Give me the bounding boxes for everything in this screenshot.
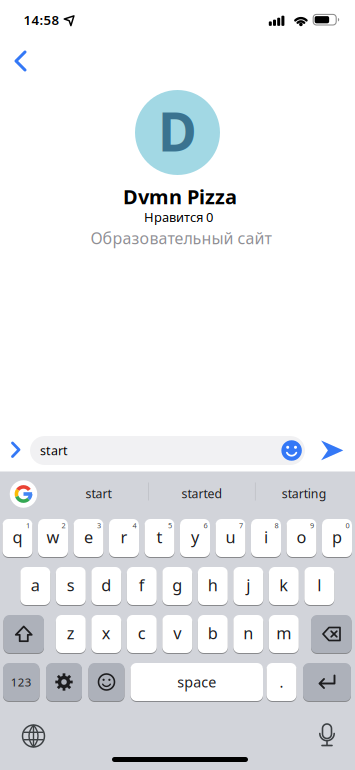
staticText: x	[102, 622, 111, 644]
button[interactable]: starting	[259, 474, 349, 512]
button[interactable]: e	[73, 518, 103, 558]
staticText: j	[246, 574, 250, 596]
staticText: m	[276, 622, 291, 644]
button[interactable]: Period	[266, 662, 296, 702]
button[interactable]: a	[20, 566, 50, 606]
staticText: i	[264, 526, 268, 548]
button[interactable]: k	[269, 566, 299, 606]
staticText: l	[317, 574, 321, 596]
staticText: 5	[168, 520, 172, 530]
button[interactable]: Emoji	[88, 662, 124, 702]
button[interactable]: Bot commands	[3, 437, 29, 463]
button[interactable]: Space	[130, 662, 263, 702]
button[interactable]: t	[144, 518, 174, 558]
staticText: 4	[132, 520, 136, 530]
staticText: c	[138, 622, 146, 644]
button[interactable]: l	[304, 566, 334, 606]
button[interactable]: g	[162, 566, 192, 606]
button[interactable]: Switch keyboard	[11, 714, 55, 758]
staticText: w	[46, 526, 59, 548]
staticText: 2	[61, 520, 65, 530]
staticText: z	[67, 622, 75, 644]
staticText: start	[85, 485, 111, 502]
staticText: f	[139, 574, 145, 596]
button[interactable]: i	[251, 518, 281, 558]
staticText: k	[279, 574, 288, 596]
button[interactable]: d	[91, 566, 121, 606]
staticText: o	[296, 526, 306, 548]
staticText: h	[208, 574, 218, 596]
button[interactable]: h	[198, 566, 228, 606]
button[interactable]: started	[157, 474, 247, 512]
staticText: u	[225, 526, 235, 548]
staticText: Нравится 0	[144, 208, 213, 226]
button[interactable]: s	[56, 566, 86, 606]
button[interactable]: Shift	[3, 614, 44, 654]
button[interactable]: z	[56, 614, 86, 654]
staticText: p	[332, 526, 342, 548]
button[interactable]: Message	[30, 436, 305, 465]
button[interactable]: Back	[0, 47, 44, 75]
staticText: d	[101, 574, 111, 596]
button[interactable]: m	[269, 614, 299, 654]
staticText: 1	[26, 520, 30, 530]
button[interactable]: x	[91, 614, 121, 654]
staticText: g	[172, 574, 182, 596]
button[interactable]: Numbers	[3, 662, 39, 702]
staticText: 7	[239, 520, 243, 530]
button[interactable]: Delete	[311, 614, 351, 654]
button[interactable]: start	[53, 474, 143, 512]
button[interactable]: o	[286, 518, 316, 558]
staticText: 123	[11, 674, 32, 690]
button[interactable]: Return	[303, 662, 351, 702]
staticText: 14:58	[23, 11, 59, 29]
staticText: Dvmn Pizza	[123, 183, 237, 210]
button[interactable]: y	[180, 518, 210, 558]
staticText: 6	[203, 520, 207, 530]
button[interactable]: r	[109, 518, 139, 558]
staticText: y	[191, 526, 199, 548]
button[interactable]: w	[38, 518, 68, 558]
staticText: s	[67, 574, 75, 596]
staticText: started	[181, 485, 222, 502]
button[interactable]: Settings	[46, 662, 82, 702]
staticText: 3	[97, 520, 101, 530]
button[interactable]: b	[198, 614, 228, 654]
button[interactable]: Dictation	[305, 714, 349, 758]
staticText: q	[12, 526, 22, 548]
staticText: v	[173, 622, 181, 644]
staticText: D	[158, 95, 197, 167]
staticText: starting	[282, 485, 327, 502]
staticText: a	[31, 574, 40, 596]
staticText: 9	[310, 520, 314, 530]
button[interactable]: q	[2, 518, 32, 558]
button[interactable]: j	[233, 566, 263, 606]
staticText: n	[243, 622, 253, 644]
staticText: t	[156, 526, 162, 548]
staticText: r	[120, 526, 127, 548]
button[interactable]: u	[215, 518, 245, 558]
button[interactable]: c	[127, 614, 157, 654]
button[interactable]: v	[162, 614, 192, 654]
button[interactable]: Stickers and emoji	[281, 439, 303, 461]
staticText: .	[279, 672, 283, 692]
staticText: 0	[345, 520, 349, 530]
staticText: start	[40, 442, 68, 459]
button[interactable]: Google search	[10, 480, 37, 508]
staticText: e	[84, 526, 93, 548]
staticText: space	[177, 672, 216, 692]
button[interactable]: n	[233, 614, 263, 654]
staticText: 8	[274, 520, 278, 530]
button[interactable]: p	[322, 518, 352, 558]
staticText: Образовательный сайт	[90, 227, 271, 249]
staticText: b	[208, 622, 218, 644]
button[interactable]: Send	[320, 440, 344, 462]
button[interactable]: f	[127, 566, 157, 606]
